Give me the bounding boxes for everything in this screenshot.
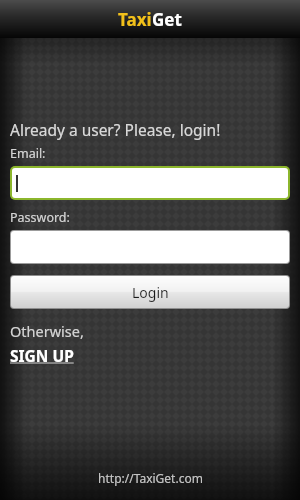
staticText: Password: bbox=[10, 209, 70, 226]
staticText: http://TaxiGet.com bbox=[98, 470, 203, 486]
staticText: Already a user? Please, login! bbox=[10, 119, 221, 140]
staticText: Login bbox=[132, 283, 169, 302]
staticText: Taxi bbox=[118, 8, 152, 31]
staticText: Get bbox=[152, 8, 182, 31]
button[interactable]: Email input bbox=[12, 168, 288, 198]
button[interactable]: Login bbox=[11, 276, 289, 308]
staticText: Email: bbox=[10, 145, 46, 162]
button[interactable]: SIGN UP bbox=[10, 345, 74, 366]
staticText: Otherwise, bbox=[10, 321, 84, 341]
staticText: SIGN UP bbox=[10, 345, 74, 366]
